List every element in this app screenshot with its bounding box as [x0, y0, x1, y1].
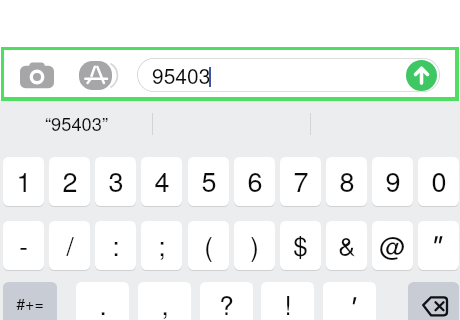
staticText: @: [379, 226, 406, 263]
staticText: &: [338, 226, 356, 263]
staticText: !: [284, 285, 292, 320]
button[interactable]: 6: [234, 157, 275, 206]
button[interactable]: 1: [3, 157, 44, 206]
staticText: -: [19, 226, 28, 263]
staticText: 4: [154, 161, 170, 200]
button[interactable]: 5: [188, 157, 229, 206]
button[interactable]: .: [76, 282, 129, 320]
staticText: $: [293, 226, 308, 263]
button[interactable]: Delete: [408, 282, 459, 320]
button[interactable]: Double quote: [418, 221, 459, 270]
staticText: 3: [108, 161, 124, 200]
staticText: 6: [247, 161, 263, 200]
button[interactable]: ,: [138, 282, 191, 320]
button[interactable]: 9: [372, 157, 413, 206]
button[interactable]: 7: [280, 157, 321, 206]
staticText: .: [99, 285, 107, 320]
staticText: /: [66, 226, 74, 263]
staticText: 8: [339, 161, 355, 200]
button[interactable]: 3: [95, 157, 136, 206]
button[interactable]: :: [95, 221, 136, 270]
button[interactable]: 8: [326, 157, 367, 206]
button[interactable]: ): [234, 221, 275, 270]
staticText: #+=: [16, 292, 44, 315]
button[interactable]: 2: [49, 157, 90, 206]
button[interactable]: @: [372, 221, 413, 270]
staticText: 5: [201, 161, 217, 200]
button[interactable]: Apostrophe: [323, 282, 376, 320]
button[interactable]: -: [3, 221, 44, 270]
staticText: ,: [161, 285, 169, 320]
button[interactable]: #+=: [3, 282, 57, 320]
staticText: 0: [431, 161, 447, 200]
button[interactable]: &: [326, 221, 367, 270]
staticText: “95403”: [45, 110, 109, 136]
staticText: ;: [158, 226, 166, 263]
button[interactable]: (: [188, 221, 229, 270]
staticText: ?: [219, 285, 234, 320]
staticText: 95403: [152, 60, 211, 90]
button[interactable]: App Store: [79, 61, 112, 90]
button[interactable]: “95403”: [14, 104, 138, 144]
staticText: :: [112, 226, 120, 263]
staticText: 9: [385, 161, 401, 200]
button[interactable]: ?: [200, 282, 253, 320]
button[interactable]: 4: [141, 157, 182, 206]
staticText: 2: [62, 161, 78, 200]
staticText: ): [250, 226, 259, 263]
button[interactable]: Camera: [19, 61, 55, 90]
button[interactable]: 0: [418, 157, 459, 206]
button[interactable]: Send: [406, 60, 437, 91]
button[interactable]: /: [49, 221, 90, 270]
button[interactable]: ;: [141, 221, 182, 270]
button[interactable]: $: [280, 221, 321, 270]
staticText: (: [204, 226, 213, 263]
staticText: 7: [293, 161, 309, 200]
button[interactable]: 95403: [137, 58, 440, 92]
button[interactable]: !: [261, 282, 314, 320]
staticText: 1: [16, 161, 32, 200]
